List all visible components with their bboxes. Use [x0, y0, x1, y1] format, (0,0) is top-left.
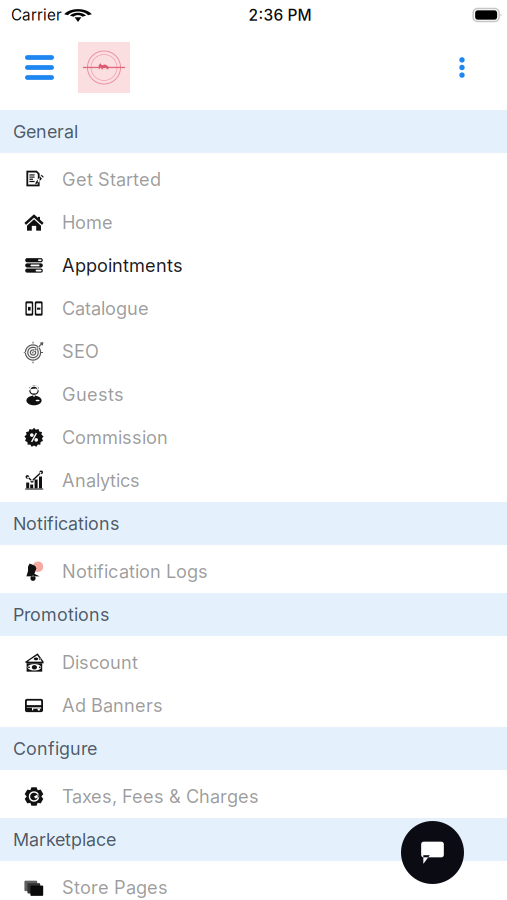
staticText: Get Started — [62, 168, 161, 190]
staticText: Promotions — [13, 604, 109, 625]
staticText: Discount — [62, 651, 138, 673]
staticText: Notification Logs — [62, 560, 208, 582]
button[interactable]: Analytics — [0, 459, 507, 502]
button[interactable]: Menu — [18, 43, 61, 91]
staticText: Catalogue — [62, 297, 149, 319]
button[interactable]: Chat — [401, 821, 464, 884]
staticText: Store Pages — [62, 876, 168, 898]
staticText: Taxes, Fees & Charges — [62, 785, 259, 807]
staticText: Appointments — [62, 254, 183, 276]
staticText: SEO — [62, 340, 99, 362]
button[interactable]: Commission — [0, 416, 507, 459]
staticText: General — [13, 121, 78, 142]
button[interactable]: Home — [0, 201, 507, 244]
staticText: Carrier — [11, 6, 62, 24]
button[interactable]: Get Started — [0, 158, 507, 201]
button[interactable]: Store Pages — [0, 866, 507, 900]
staticText: Ad Banners — [62, 694, 163, 716]
button[interactable]: Discount — [0, 641, 507, 684]
button[interactable]: Appointments — [0, 244, 507, 287]
staticText: Marketplace — [13, 829, 116, 850]
button[interactable]: Brand logo — [78, 42, 130, 93]
staticText: Guests — [62, 383, 124, 405]
button[interactable]: More options — [444, 43, 480, 91]
staticText: Home — [62, 211, 113, 233]
staticText: Analytics — [62, 469, 140, 491]
staticText: Configure — [13, 738, 97, 759]
staticText: Notifications — [13, 513, 119, 534]
button[interactable]: Guests — [0, 373, 507, 416]
staticText: 2:36 PM — [248, 6, 311, 24]
button[interactable]: Catalogue — [0, 287, 507, 330]
button[interactable]: Taxes, Fees & Charges — [0, 775, 507, 818]
button[interactable]: SEO — [0, 330, 507, 373]
button[interactable]: Notification Logs — [0, 550, 507, 593]
button[interactable]: Ad Banners — [0, 684, 507, 727]
staticText: Commission — [62, 426, 168, 448]
